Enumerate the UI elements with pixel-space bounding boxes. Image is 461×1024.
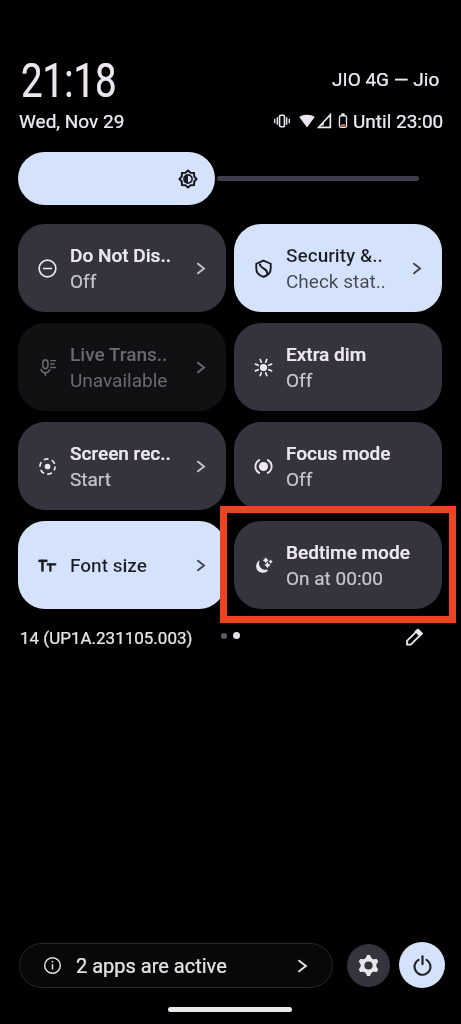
staticText: Check stat.. — [286, 270, 386, 292]
button[interactable]: Font size — [18, 521, 226, 609]
staticText: 14 (UP1A.231105.003) — [20, 628, 193, 648]
button[interactable]: Extra dim — [234, 323, 442, 411]
staticText: Font size — [70, 554, 147, 576]
staticText: Screen rec.. — [70, 442, 171, 464]
staticText: 21:18 — [21, 52, 117, 108]
staticText: Security &.. — [286, 244, 383, 266]
staticText: On at 00:00 — [286, 567, 383, 589]
button[interactable]: Do Not Dis.. — [18, 224, 226, 312]
staticText: Until 23:00 — [353, 110, 444, 132]
button[interactable]: Power — [399, 942, 445, 988]
staticText: Bedtime mode — [286, 541, 410, 563]
staticText: Do Not Dis.. — [70, 244, 172, 266]
staticText: Off — [286, 468, 313, 490]
staticText: Extra dim — [286, 343, 367, 365]
button[interactable]: 2 apps are active — [19, 943, 333, 988]
button[interactable]: Bedtime mode — [234, 521, 442, 609]
button[interactable]: Focus mode — [234, 422, 442, 510]
staticText: Unavailable — [70, 369, 168, 391]
staticText: Focus mode — [286, 442, 391, 464]
button[interactable]: Brightness — [18, 152, 215, 205]
button[interactable]: Screen rec.. — [18, 422, 226, 510]
staticText: Off — [70, 270, 97, 292]
staticText: Start — [70, 468, 111, 490]
button[interactable]: Edit tiles — [397, 619, 431, 653]
button[interactable]: Settings — [347, 944, 390, 987]
staticText: 2 apps are active — [76, 954, 227, 977]
button[interactable]: Security &.. — [234, 224, 442, 312]
staticText: Wed, Nov 29 — [19, 110, 125, 132]
staticText: Live Trans.. — [70, 343, 168, 365]
staticText: JIO 4G — Jio — [332, 68, 440, 90]
staticText: Off — [286, 369, 313, 391]
button[interactable]: Live Trans.. — [18, 323, 226, 411]
